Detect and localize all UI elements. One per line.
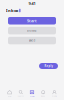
staticText: Profile <box>52 95 57 97</box>
staticText: Reply <box>44 64 52 68</box>
staticText: Start <box>27 18 37 23</box>
staticText: Inbox <box>6 8 18 13</box>
button[interactable]: Home <box>4 87 15 99</box>
button[interactable]: Reply <box>39 63 58 69</box>
staticText: Home <box>8 95 12 97</box>
staticText: Inbox <box>41 95 45 97</box>
staticText: Create <box>29 95 34 97</box>
button[interactable]: Inbox <box>38 87 49 99</box>
button[interactable]: Search <box>15 87 26 99</box>
button[interactable]: Start <box>8 17 56 24</box>
button[interactable]: Browse <box>8 27 56 34</box>
staticText: Saved <box>28 39 35 42</box>
button[interactable]: Profile <box>49 87 60 99</box>
button[interactable]: Saved <box>8 37 56 44</box>
button[interactable]: Create <box>26 87 38 99</box>
staticText: Browse <box>27 29 37 32</box>
staticText: 9:41 <box>28 1 35 6</box>
